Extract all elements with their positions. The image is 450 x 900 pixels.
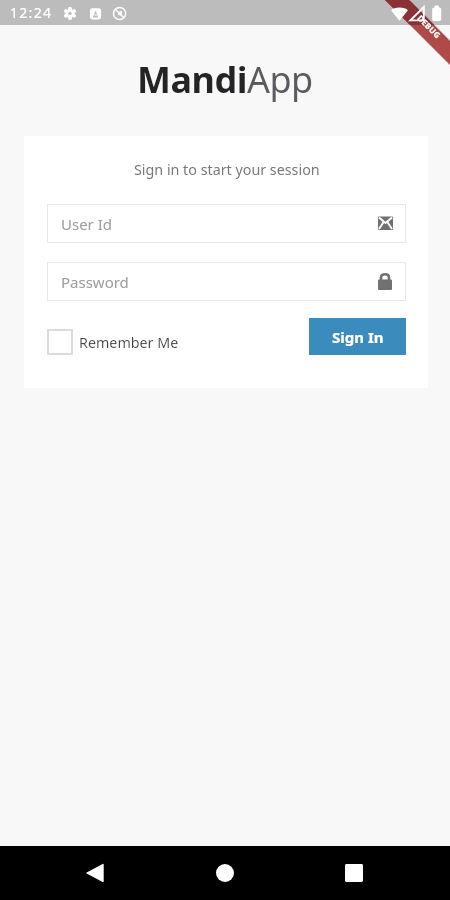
- staticText: Remember Me: [79, 333, 179, 352]
- staticText: MandiApp: [137, 55, 313, 104]
- button[interactable]: Sign In: [309, 318, 406, 355]
- staticText: Password: [61, 272, 129, 292]
- other: Password: [378, 273, 393, 290]
- button[interactable]: Back: [69, 847, 121, 899]
- button[interactable]: User Id: [47, 204, 406, 243]
- button[interactable]: Remember Me: [47, 329, 179, 355]
- staticText: User Id: [61, 214, 113, 234]
- button[interactable]: Recent apps: [328, 847, 380, 899]
- button[interactable]: Password: [47, 262, 406, 301]
- staticText: Sign In: [332, 327, 384, 347]
- staticText: 12:24: [10, 3, 53, 22]
- staticText: Sign in to start your session: [134, 160, 320, 179]
- other: Email: [378, 215, 393, 232]
- button[interactable]: Home: [199, 847, 251, 899]
- staticText: DEBUG: [415, 12, 444, 41]
